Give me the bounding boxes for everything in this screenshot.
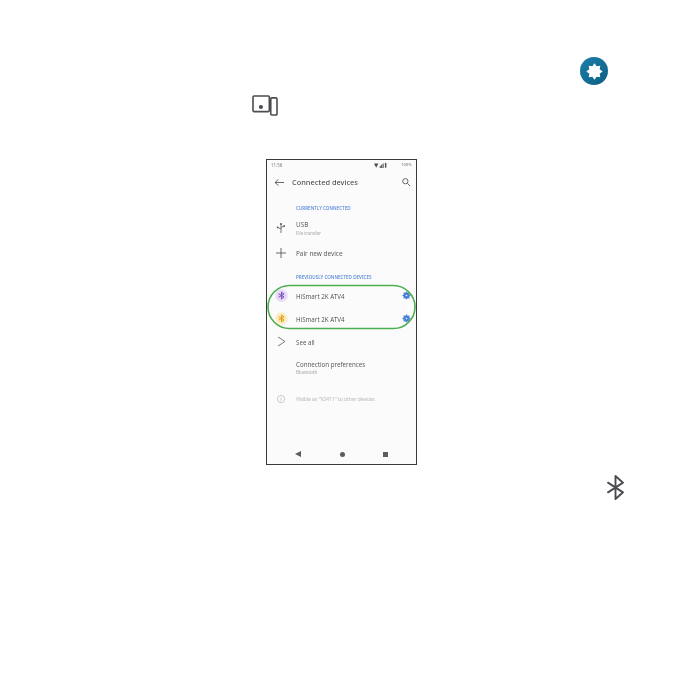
button[interactable]: Back xyxy=(287,443,309,465)
button[interactable]: Settings xyxy=(580,57,608,85)
button[interactable]: Device settings xyxy=(395,284,417,307)
button[interactable]: USB xyxy=(266,215,417,241)
staticText: Connection preferences xyxy=(296,360,366,368)
staticText: Visible as "V2411" to other devices xyxy=(296,396,375,403)
button[interactable]: Back xyxy=(266,170,292,194)
button[interactable]: Home xyxy=(331,443,353,465)
button[interactable]: Connection preferences xyxy=(266,353,417,381)
staticText: 11:56 xyxy=(271,162,283,168)
button[interactable]: Pair new device xyxy=(266,241,417,265)
staticText: File transfer xyxy=(296,230,322,236)
button[interactable]: Device settings xyxy=(395,307,417,330)
staticText: Bluetooth xyxy=(296,369,318,375)
button[interactable]: See all xyxy=(266,330,417,353)
button[interactable]: Search xyxy=(395,170,417,194)
button[interactable]: Recents xyxy=(374,443,396,465)
button[interactable]: HiSmart 2K ATV4 xyxy=(266,284,417,307)
button[interactable]: Bluetooth xyxy=(602,474,629,501)
button[interactable]: Connected devices xyxy=(249,91,281,119)
button[interactable]: HiSmart 2K ATV4 xyxy=(266,307,417,330)
staticText: Pair new device xyxy=(296,249,343,258)
staticText: Connected devices xyxy=(292,177,358,187)
staticText: See all xyxy=(296,338,315,346)
staticText: HiSmart 2K ATV4 xyxy=(296,292,345,300)
staticText: HiSmart 2K ATV4 xyxy=(296,315,345,323)
staticText: CURRENTLY CONNECTED xyxy=(296,205,351,211)
staticText: PREVIOUSLY CONNECTED DEVICES xyxy=(296,274,372,280)
staticText: 100% xyxy=(401,162,412,168)
staticText: USB xyxy=(296,220,309,229)
